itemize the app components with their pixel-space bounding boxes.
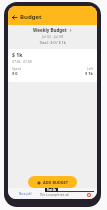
staticText: 07:02 - 07:08 (12, 59, 32, 63)
staticText: Spent (12, 66, 21, 70)
staticText: Total : $ 0 / $ 1k (8, 40, 97, 45)
staticText: Budget (20, 13, 42, 21)
staticText: This is a sample text ad. (40, 193, 69, 197)
staticText: Left (87, 66, 93, 70)
staticText: $ 1k (12, 51, 23, 58)
staticText: Jul 02 - Jul 08 (8, 34, 97, 39)
staticText: Nice job! (19, 192, 32, 196)
staticText: Weekly Budget (33, 27, 67, 33)
button[interactable]: Back (8, 9, 20, 25)
staticText: $ 0 (12, 71, 18, 76)
button[interactable]: $ 1k (8, 49, 97, 82)
staticText: Test Ac (47, 188, 57, 192)
staticText: $ 1k (85, 71, 93, 76)
button[interactable]: ADD BUDGET (28, 176, 77, 188)
staticText: ADD BUDGET (43, 180, 69, 185)
